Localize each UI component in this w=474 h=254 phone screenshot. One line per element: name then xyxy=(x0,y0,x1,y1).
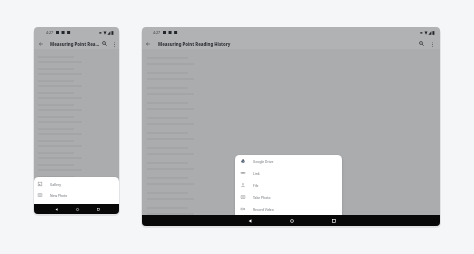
staticText: Measuring Point Rea… xyxy=(50,41,100,47)
button[interactable]: Search xyxy=(100,39,109,48)
button[interactable]: Google Drive xyxy=(235,155,342,167)
button[interactable]: Recent apps xyxy=(328,215,339,226)
button[interactable]: More options xyxy=(428,40,436,48)
staticText: 4:27 xyxy=(153,30,161,35)
button[interactable]: Record Video xyxy=(235,203,342,215)
button[interactable]: Link xyxy=(235,167,342,179)
button[interactable]: Take Photo xyxy=(235,191,342,203)
staticText: File xyxy=(253,183,259,187)
staticText: Gallery xyxy=(50,182,62,186)
button[interactable]: More options xyxy=(110,40,118,48)
button[interactable]: New Photo xyxy=(34,189,119,200)
button[interactable]: Back xyxy=(244,215,255,226)
button[interactable]: Recent apps xyxy=(93,204,103,214)
staticText: 4:27 xyxy=(46,30,54,35)
button[interactable]: Back xyxy=(51,204,61,214)
button[interactable]: Back xyxy=(36,39,45,48)
button[interactable]: File xyxy=(235,179,342,191)
button[interactable]: Back xyxy=(143,39,152,48)
staticText: Take Photo xyxy=(253,195,271,199)
button[interactable]: Home xyxy=(286,215,297,226)
button[interactable]: Home xyxy=(72,204,82,214)
button[interactable]: Search xyxy=(417,39,426,48)
staticText: Measuring Point Reading History xyxy=(158,41,231,47)
staticText: Link xyxy=(253,171,260,175)
staticText: Record Video xyxy=(253,207,274,211)
staticText: Google Drive xyxy=(253,159,274,163)
button[interactable]: Gallery xyxy=(34,178,119,189)
staticText: New Photo xyxy=(50,193,68,197)
